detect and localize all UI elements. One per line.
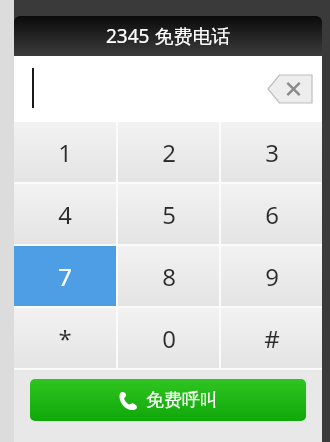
staticText: 2 [162, 136, 176, 169]
staticText: 5 [162, 198, 176, 231]
button[interactable]: 6 [221, 184, 322, 244]
staticText: 0 [162, 322, 176, 355]
button[interactable]: 9 [221, 246, 322, 306]
button[interactable]: 2 [118, 122, 219, 182]
staticText: 4 [58, 198, 72, 231]
button[interactable]: 1 [14, 122, 116, 182]
staticText: * [58, 322, 72, 355]
button[interactable]: Backspace [268, 75, 312, 103]
staticText: 1 [58, 136, 72, 169]
button[interactable]: 0 [118, 308, 219, 368]
staticText: # [264, 322, 280, 355]
staticText: 免费呼叫 [146, 389, 218, 412]
staticText: 2345 免费电话 [106, 23, 231, 49]
button[interactable]: 3 [221, 122, 322, 182]
staticText: 6 [265, 198, 279, 231]
staticText: 3 [265, 136, 279, 169]
button[interactable]: # [221, 308, 322, 368]
button[interactable]: 7 [14, 246, 116, 306]
button[interactable]: 免费呼叫 [30, 379, 306, 421]
staticText: 7 [58, 260, 72, 293]
staticText: 9 [265, 260, 279, 293]
button[interactable]: 4 [14, 184, 116, 244]
staticText: 8 [162, 260, 176, 293]
button[interactable]: 5 [118, 184, 219, 244]
button[interactable]: 8 [118, 246, 219, 306]
button[interactable]: * [14, 308, 116, 368]
